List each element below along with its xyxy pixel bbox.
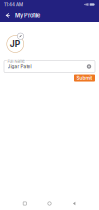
button[interactable]: Submit xyxy=(74,74,95,81)
button[interactable]: Back xyxy=(3,9,13,22)
button[interactable]: Back xyxy=(67,198,81,208)
staticText: Full Name xyxy=(8,59,25,64)
button[interactable]: Change profile photo xyxy=(4,33,26,52)
button[interactable]: Recent apps xyxy=(18,198,32,208)
staticText: My Profile xyxy=(15,12,40,19)
staticText: JP xyxy=(10,39,21,49)
button[interactable]: Clear text xyxy=(85,63,92,70)
staticText: 11:44 AM xyxy=(4,2,23,7)
button[interactable]: Home xyxy=(42,198,56,208)
staticText: Submit xyxy=(76,75,92,81)
staticText: Jigar Patel xyxy=(7,64,31,69)
